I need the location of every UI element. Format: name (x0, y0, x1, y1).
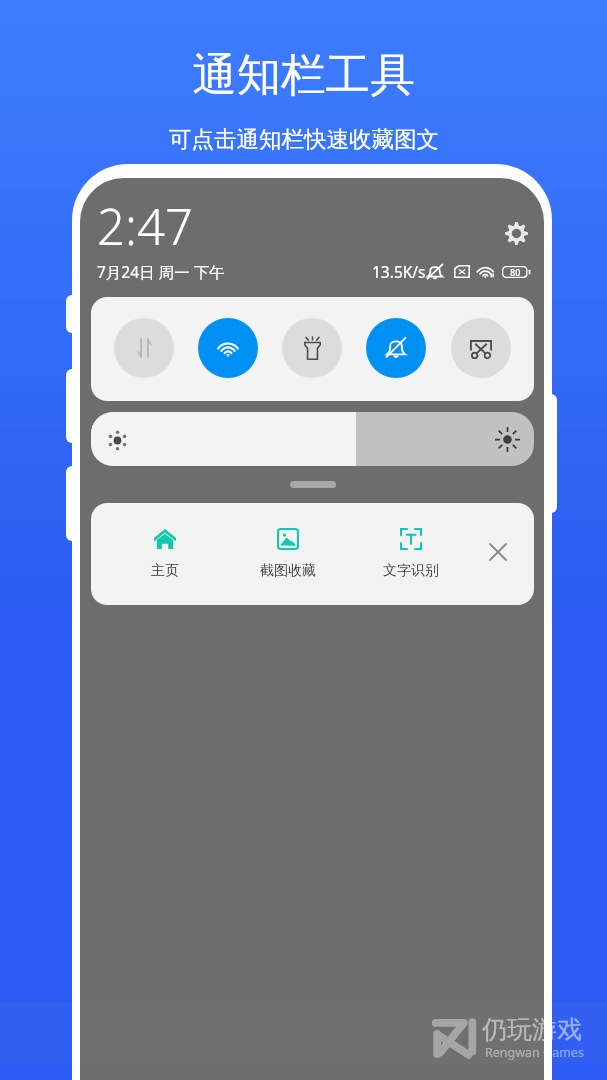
button[interactable]: Close (481, 535, 515, 569)
staticText: 可点击通知栏快速收藏图文 (169, 125, 439, 153)
button[interactable]: Settings (500, 217, 533, 250)
staticText: 仍玩游戏 (482, 1014, 582, 1045)
button[interactable]: Flashlight (282, 318, 342, 378)
staticText: Rengwan Games (485, 1044, 584, 1061)
button[interactable]: Mobile data (114, 318, 174, 378)
staticText: 主页 (151, 562, 179, 580)
button[interactable]: WiFi (198, 318, 258, 378)
button[interactable]: 主页 (120, 528, 210, 598)
staticText: 7月24日 周一 下午 (97, 261, 225, 282)
button[interactable]: Do not disturb (366, 318, 426, 378)
staticText: 截图收藏 (260, 562, 316, 580)
staticText: 文字识别 (383, 562, 439, 580)
button[interactable]: 截图收藏 (243, 528, 333, 598)
staticText: 80 (510, 266, 521, 278)
button[interactable]: 文字识别 (366, 528, 456, 598)
staticText: 2:47 (97, 193, 193, 260)
staticText: 通知栏工具 (192, 47, 415, 103)
button[interactable]: Screenshot (451, 318, 511, 378)
button[interactable]: Brightness (91, 412, 534, 466)
staticText: 13.5K/s (372, 261, 426, 282)
